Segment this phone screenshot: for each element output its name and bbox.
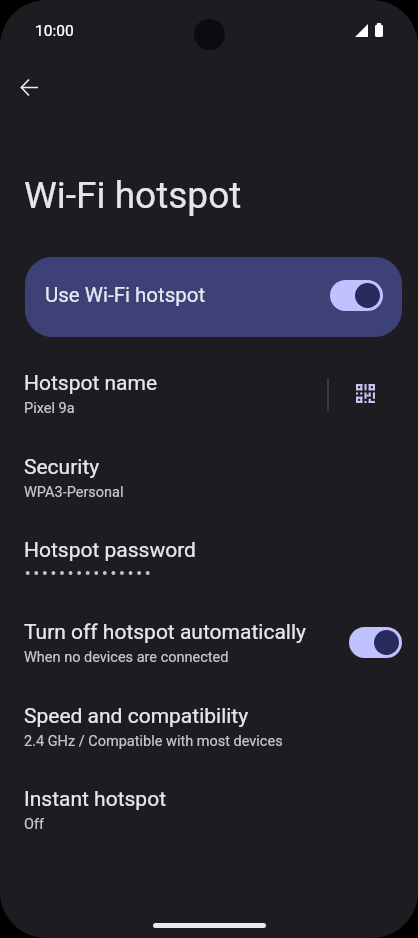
button[interactable]: Instant hotspot: [0, 763, 418, 846]
staticText: 10:00: [35, 22, 74, 40]
button[interactable]: Use Wi-Fi hotspot: [25, 257, 402, 337]
button[interactable]: Toggle: [330, 280, 383, 311]
button[interactable]: Hotspot password: [0, 514, 418, 597]
staticText: Pixel 9a: [24, 400, 75, 417]
button[interactable]: Hotspot name: [0, 347, 418, 430]
button[interactable]: Toggle: [349, 627, 402, 658]
staticText: Hotspot password: [24, 538, 196, 563]
staticText: Wi-Fi hotspot: [24, 174, 242, 217]
button[interactable]: Security: [0, 431, 418, 514]
button[interactable]: Share hotspot QR code: [343, 371, 387, 415]
staticText: Speed and compatibility: [24, 704, 249, 729]
staticText: Hotspot name: [24, 371, 158, 396]
staticText: When no devices are connected: [24, 649, 229, 666]
button[interactable]: Back: [9, 67, 49, 107]
staticText: Use Wi-Fi hotspot: [45, 283, 206, 307]
staticText: Instant hotspot: [24, 787, 167, 812]
staticText: Off: [24, 816, 45, 833]
button[interactable]: Turn off hotspot automatically: [0, 596, 418, 679]
staticText: Security: [24, 455, 100, 480]
staticText: Turn off hotspot automatically: [24, 620, 306, 645]
staticText: WPA3-Personal: [24, 484, 124, 501]
button[interactable]: Speed and compatibility: [0, 680, 418, 763]
staticText: 2.4 GHz / Compatible with most devices: [24, 733, 283, 750]
